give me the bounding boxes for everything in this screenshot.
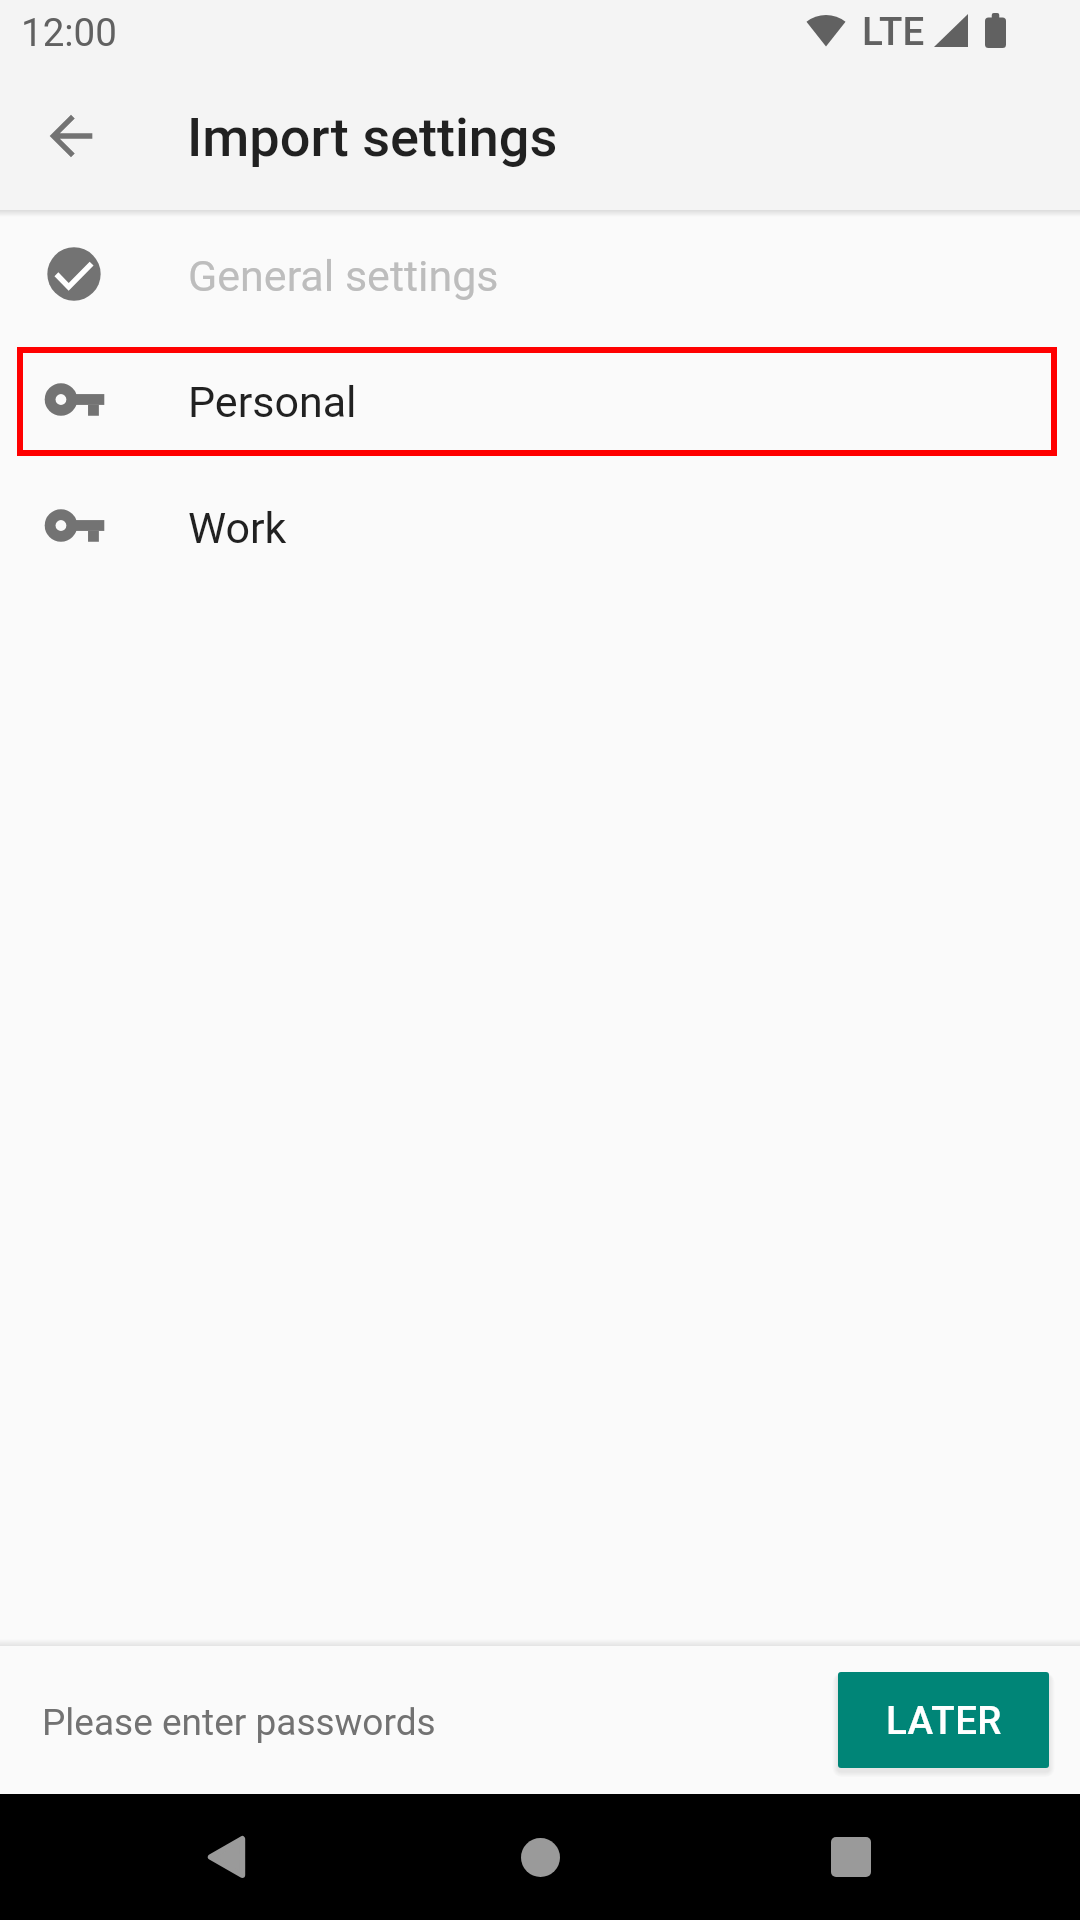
- staticText: Personal: [188, 377, 357, 427]
- button[interactable]: Back: [165, 1797, 285, 1917]
- button[interactable]: Recent apps: [791, 1797, 911, 1917]
- staticText: 12:00: [21, 10, 117, 55]
- staticText: Work: [188, 503, 287, 553]
- staticText: General settings: [188, 251, 499, 301]
- staticText: LATER: [886, 1698, 1002, 1743]
- staticText: Import settings: [187, 106, 558, 169]
- staticText: Please enter passwords: [42, 1701, 436, 1744]
- button[interactable]: Home: [480, 1797, 600, 1917]
- button[interactable]: General settings: [0, 212, 1080, 338]
- button[interactable]: Work: [0, 464, 1080, 590]
- button[interactable]: Personal: [0, 338, 1080, 464]
- button[interactable]: Navigate up: [25, 90, 117, 182]
- button[interactable]: LATER: [838, 1672, 1049, 1768]
- staticText: LTE: [862, 9, 925, 54]
